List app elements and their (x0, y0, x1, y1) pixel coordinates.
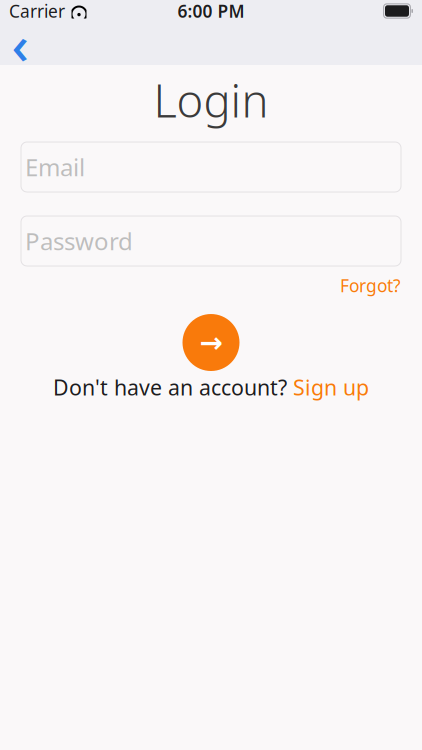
staticText: Carrier (9, 0, 65, 22)
staticText: 6:00 PM (177, 0, 244, 22)
button[interactable]: Sign up (293, 373, 369, 401)
button[interactable]: Forgot? (340, 274, 401, 297)
staticText: → (199, 327, 222, 358)
staticText: Password (25, 225, 133, 257)
button[interactable]: Back (0, 22, 42, 65)
button[interactable]: Password (21, 216, 401, 266)
staticText: Login (153, 70, 268, 130)
staticText: ‹ (11, 8, 28, 79)
button[interactable]: Email (21, 142, 401, 192)
button[interactable]: Log in (182, 314, 239, 371)
staticText: Email (25, 151, 85, 183)
staticText: Forgot? (340, 274, 401, 297)
staticText: Sign up (293, 373, 369, 401)
staticText: Don't have an account? (53, 373, 293, 401)
